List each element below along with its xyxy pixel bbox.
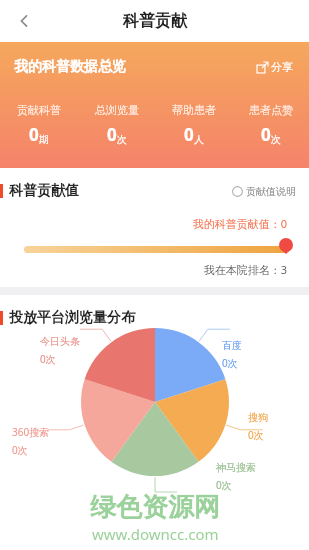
staticText: 搜狗 bbox=[248, 411, 268, 424]
staticText: 患者点赞 bbox=[249, 103, 293, 117]
staticText: 次 bbox=[117, 133, 127, 146]
button[interactable]: 360搜索 bbox=[12, 425, 50, 457]
staticText: 绿色资源网 bbox=[90, 491, 220, 524]
staticText: 我的科普贡献值：0 bbox=[0, 216, 287, 231]
button[interactable]: 患者点赞 bbox=[232, 103, 309, 146]
staticText: www.downcc.com bbox=[92, 524, 219, 544]
staticText: 次 bbox=[271, 133, 281, 146]
staticText: 0 bbox=[261, 123, 271, 146]
staticText: 今日头条 bbox=[40, 335, 80, 348]
staticText: 分享 bbox=[271, 60, 293, 74]
staticText: 0 bbox=[184, 123, 194, 146]
button[interactable]: Back bbox=[6, 3, 42, 39]
staticText: 贡献值说明 bbox=[246, 185, 296, 198]
staticText: 总浏览量 bbox=[95, 103, 139, 117]
button[interactable]: 分享 bbox=[253, 56, 297, 78]
staticText: 我在本院排名：3 bbox=[0, 262, 287, 277]
button[interactable]: 神马搜索 bbox=[216, 461, 256, 492]
staticText: 360搜索 bbox=[12, 425, 50, 439]
button[interactable]: 今日头条 bbox=[40, 335, 80, 366]
staticText: 0 bbox=[29, 123, 39, 146]
staticText: 人 bbox=[194, 133, 204, 146]
staticText: 0次 bbox=[216, 478, 232, 492]
button[interactable]: 总浏览量 bbox=[78, 103, 155, 146]
staticText: 百度 bbox=[222, 339, 242, 352]
staticText: 科普贡献 bbox=[123, 11, 187, 31]
staticText: 0次 bbox=[222, 356, 238, 370]
button[interactable]: 贡献值说明 bbox=[229, 182, 299, 201]
button[interactable]: 搜狗 bbox=[248, 411, 268, 442]
staticText: 我的科普数据总览 bbox=[14, 58, 126, 76]
button[interactable]: 帮助患者 bbox=[155, 103, 232, 146]
staticText: 科普贡献值 bbox=[9, 182, 79, 200]
staticText: 投放平台浏览量分布 bbox=[9, 309, 135, 327]
staticText: 0次 bbox=[40, 352, 56, 366]
staticText: 帮助患者 bbox=[172, 103, 216, 117]
button[interactable]: 贡献科普 bbox=[0, 103, 78, 146]
staticText: 神马搜索 bbox=[216, 461, 256, 474]
staticText: 0次 bbox=[248, 428, 264, 442]
staticText: 0次 bbox=[12, 443, 28, 457]
staticText: 0 bbox=[107, 123, 117, 146]
staticText: 贡献科普 bbox=[17, 103, 61, 117]
button[interactable]: 百度 bbox=[222, 339, 242, 370]
staticText: 期 bbox=[39, 133, 49, 146]
